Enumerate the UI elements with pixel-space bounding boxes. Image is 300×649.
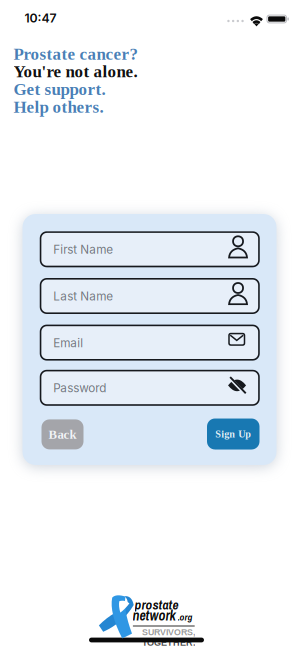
staticText: Help others. [13,98,103,116]
staticText: prostate [134,596,178,614]
button[interactable]: Sign Up [207,418,259,449]
button[interactable]: Show password [227,377,247,394]
staticText: Email [53,336,83,350]
staticText: Sign Up [215,428,251,440]
button[interactable]: Back [41,419,83,449]
staticText: network [132,606,175,625]
staticText: Password [53,381,106,395]
staticText: 10:47 [24,11,56,25]
staticText: Prostate cancer? [13,44,138,63]
staticText: Get support. [13,80,105,99]
staticText: Back [48,427,76,441]
staticText: SURVIVORS, [142,627,195,637]
staticText: TOGETHER. [142,637,196,648]
staticText: You're not alone. [13,62,137,81]
staticText: .org [177,610,192,624]
staticText: First Name [53,242,113,257]
staticText: Last Name [53,289,113,303]
